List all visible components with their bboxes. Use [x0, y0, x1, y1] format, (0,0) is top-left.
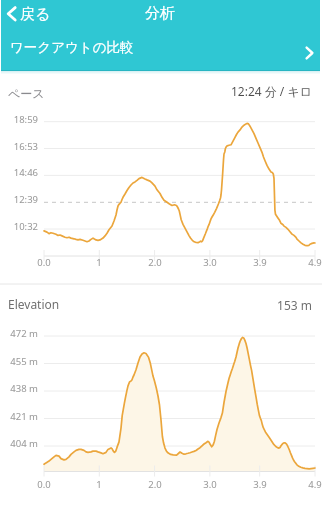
staticText: 戻る: [20, 5, 51, 24]
staticText: 438 m: [10, 382, 38, 395]
staticText: 0.0: [37, 478, 51, 491]
staticText: ワークアウトの比較: [10, 39, 134, 56]
staticText: 3.0: [203, 256, 217, 269]
staticText: 2.0: [148, 478, 162, 491]
staticText: ペース: [8, 86, 45, 101]
staticText: 1: [96, 478, 102, 491]
staticText: 455 m: [10, 355, 38, 368]
staticText: Elevation: [8, 296, 60, 312]
staticText: 2.0: [148, 256, 162, 269]
staticText: 10:32: [13, 220, 38, 233]
staticText: 16:53: [13, 140, 38, 153]
staticText: 421 m: [10, 410, 38, 423]
staticText: 153 m: [277, 297, 312, 313]
staticText: 14:46: [13, 166, 38, 179]
staticText: 12:39: [13, 193, 38, 206]
staticText: 1: [96, 256, 102, 269]
staticText: 18:59: [13, 113, 38, 126]
staticText: 404 m: [10, 437, 38, 450]
button[interactable]: ワークアウトの比較: [0, 28, 322, 68]
staticText: 0.0: [37, 256, 51, 269]
staticText: 3.0: [203, 478, 217, 491]
staticText: 472 m: [10, 327, 38, 340]
staticText: 12:24 分 / キロ: [230, 83, 312, 99]
staticText: 分析: [145, 4, 175, 23]
staticText: 3.9: [253, 478, 267, 491]
button[interactable]: 戻る: [0, 0, 70, 28]
staticText: 3.9: [253, 256, 267, 269]
staticText: 4.9: [308, 478, 322, 491]
staticText: 4.9: [308, 256, 322, 269]
